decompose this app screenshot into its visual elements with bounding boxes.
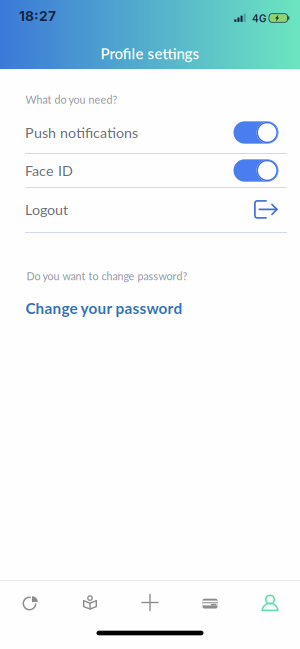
button[interactable]: Cards xyxy=(182,584,238,624)
button[interactable]: Profile xyxy=(242,583,298,623)
staticText: Do you want to change password? xyxy=(26,270,187,282)
button[interactable]: Change your password xyxy=(25,294,182,322)
button[interactable]: Statistics xyxy=(2,582,58,622)
staticText: What do you need? xyxy=(25,93,117,106)
staticText: 4G xyxy=(252,13,266,25)
button[interactable]: Learn xyxy=(62,583,118,623)
staticText: 18:27 xyxy=(19,8,56,24)
staticText: Change your password xyxy=(25,299,182,317)
button[interactable]: Face ID xyxy=(233,159,278,182)
staticText: Logout xyxy=(25,201,68,218)
staticText: Profile settings xyxy=(100,44,199,63)
staticText: Face ID xyxy=(25,162,73,179)
button[interactable]: Push notifications xyxy=(233,121,278,144)
staticText: Push notifications xyxy=(25,124,138,141)
button[interactable]: Logout xyxy=(0,188,300,230)
button[interactable]: Add xyxy=(122,582,178,622)
